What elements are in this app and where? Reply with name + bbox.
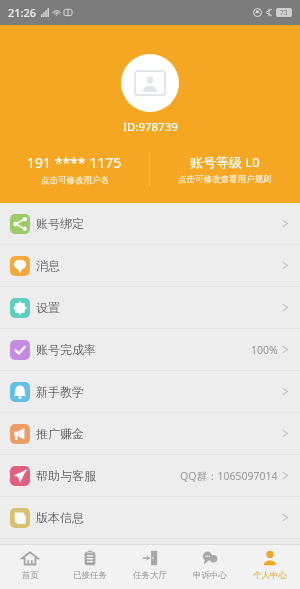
staticText: 账号等级 L0 <box>190 153 260 171</box>
button[interactable]: 版本信息 <box>0 497 300 538</box>
staticText: 帮助与客服 <box>36 468 96 483</box>
button[interactable]: 账号绑定 <box>0 203 300 244</box>
staticText: 账号绑定 <box>36 216 84 231</box>
button[interactable]: 帮助与客服 <box>0 455 300 496</box>
staticText: 个人中心 <box>253 570 287 581</box>
staticText: 73 <box>280 8 288 17</box>
button[interactable]: 个人中心 <box>240 544 300 589</box>
staticText: 设置 <box>36 300 60 315</box>
button[interactable]: 191 **** 1175 <box>0 141 149 197</box>
staticText: 点击可修改用户名 <box>41 175 109 186</box>
staticText: QQ群：1065097014 <box>180 469 278 483</box>
staticText: 版本信息 <box>36 510 84 525</box>
button[interactable]: 首页 <box>0 544 60 589</box>
staticText: 191 **** 1175 <box>27 153 122 172</box>
staticText: 21:26 <box>8 5 37 20</box>
staticText: ID:978739 <box>123 119 178 135</box>
button[interactable]: 账号等级 L0 <box>150 141 300 197</box>
staticText: 账号完成率 <box>36 342 96 357</box>
staticText: 推广赚金 <box>36 426 84 441</box>
button[interactable]: 推广赚金 <box>0 413 300 454</box>
staticText: 消息 <box>36 258 60 273</box>
staticText: 已接任务 <box>73 570 107 581</box>
button[interactable]: 消息 <box>0 245 300 286</box>
button[interactable]: 已接任务 <box>60 544 120 589</box>
button[interactable]: 申诉中心 <box>180 544 240 589</box>
button[interactable]: 设置 <box>0 287 300 328</box>
staticText: 100% <box>251 343 278 357</box>
button[interactable]: 账号完成率 <box>0 329 300 370</box>
staticText: 任务大厅 <box>133 570 167 581</box>
button[interactable]: 任务大厅 <box>120 544 180 589</box>
staticText: 点击可修改查看用户规则 <box>178 174 272 185</box>
staticText: 新手教学 <box>36 384 84 399</box>
staticText: 申诉中心 <box>193 570 227 581</box>
button[interactable]: 新手教学 <box>0 371 300 412</box>
staticText: 首页 <box>22 570 39 581</box>
button[interactable]: 头像 <box>121 54 179 112</box>
